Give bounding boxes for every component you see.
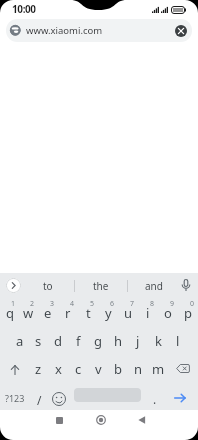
button[interactable]: l bbox=[168, 326, 188, 354]
button[interactable]: the bbox=[75, 273, 127, 298]
staticText: y bbox=[105, 304, 112, 322]
staticText: x bbox=[55, 360, 62, 378]
staticText: to bbox=[43, 279, 53, 293]
staticText: 4 bbox=[70, 299, 75, 309]
button[interactable]: to bbox=[21, 273, 74, 298]
staticText: o bbox=[164, 304, 172, 322]
staticText: a bbox=[16, 332, 24, 350]
button[interactable]: o bbox=[158, 298, 178, 326]
button[interactable]: u bbox=[118, 298, 138, 326]
button[interactable]: t bbox=[78, 298, 98, 326]
staticText: 7 bbox=[130, 299, 135, 309]
staticText: l bbox=[176, 332, 180, 350]
button[interactable]: y bbox=[98, 298, 118, 326]
button[interactable]: . bbox=[148, 382, 168, 410]
button[interactable] bbox=[69, 382, 148, 410]
button[interactable]: g bbox=[88, 326, 108, 354]
button[interactable]: e bbox=[38, 298, 58, 326]
button[interactable]: h bbox=[108, 326, 128, 354]
button[interactable] bbox=[39, 410, 79, 430]
staticText: s bbox=[35, 332, 42, 350]
button[interactable] bbox=[49, 382, 69, 410]
button[interactable] bbox=[6, 278, 21, 293]
staticText: g bbox=[94, 332, 102, 350]
button[interactable] bbox=[122, 410, 162, 430]
button[interactable]: j bbox=[128, 326, 148, 354]
staticText: u bbox=[124, 304, 133, 322]
button[interactable] bbox=[0, 354, 29, 382]
button[interactable]: ?123 bbox=[0, 382, 29, 410]
staticText: the bbox=[93, 279, 109, 293]
staticText: w bbox=[23, 304, 34, 322]
staticText: k bbox=[155, 332, 162, 350]
staticText: h bbox=[114, 332, 123, 350]
staticText: d bbox=[54, 332, 62, 350]
staticText: 5 bbox=[90, 299, 95, 309]
button[interactable]: z bbox=[29, 354, 48, 382]
button[interactable]: k bbox=[148, 326, 168, 354]
staticText: and bbox=[145, 279, 163, 293]
staticText: p bbox=[184, 304, 192, 322]
button[interactable]: p bbox=[178, 298, 198, 326]
staticText: 1 bbox=[11, 299, 16, 309]
button[interactable]: v bbox=[88, 354, 108, 382]
staticText: r bbox=[65, 304, 71, 322]
staticText: f bbox=[76, 332, 81, 350]
staticText: 3 bbox=[50, 299, 55, 309]
button[interactable]: www.xiaomi.com bbox=[6, 19, 192, 42]
staticText: ?123 bbox=[5, 392, 25, 404]
staticText: b bbox=[114, 360, 122, 378]
button[interactable]: a bbox=[10, 326, 29, 354]
staticText: m bbox=[152, 360, 165, 378]
button[interactable]: i bbox=[138, 298, 158, 326]
staticText: j bbox=[136, 332, 140, 350]
staticText: q bbox=[6, 304, 14, 322]
button[interactable]: x bbox=[48, 354, 68, 382]
button[interactable]: n bbox=[128, 354, 148, 382]
button[interactable] bbox=[168, 382, 198, 410]
button[interactable] bbox=[168, 354, 198, 382]
button[interactable]: w bbox=[19, 298, 38, 326]
staticText: t bbox=[86, 304, 91, 322]
staticText: 8 bbox=[150, 299, 155, 309]
button[interactable]: q bbox=[0, 298, 19, 326]
staticText: n bbox=[134, 360, 143, 378]
button[interactable] bbox=[175, 25, 187, 37]
staticText: 6 bbox=[110, 299, 115, 309]
button[interactable]: f bbox=[68, 326, 88, 354]
staticText: c bbox=[75, 360, 82, 378]
button[interactable]: r bbox=[58, 298, 78, 326]
button[interactable]: d bbox=[48, 326, 68, 354]
staticText: v bbox=[95, 360, 102, 378]
button[interactable]: and bbox=[128, 273, 180, 298]
staticText: e bbox=[44, 304, 52, 322]
button[interactable]: m bbox=[148, 354, 168, 382]
button[interactable]: / bbox=[29, 382, 49, 410]
staticText: www.xiaomi.com bbox=[26, 24, 103, 37]
staticText: 2 bbox=[30, 299, 35, 309]
staticText: 10:00 bbox=[12, 2, 36, 15]
staticText: . bbox=[153, 391, 157, 407]
staticText: 0 bbox=[190, 299, 195, 309]
button[interactable] bbox=[81, 410, 121, 430]
staticText: 9 bbox=[170, 299, 175, 309]
staticText: i bbox=[146, 304, 150, 322]
staticText: / bbox=[37, 392, 42, 408]
button[interactable]: c bbox=[68, 354, 88, 382]
staticText: z bbox=[35, 360, 42, 378]
button[interactable]: s bbox=[29, 326, 48, 354]
button[interactable]: b bbox=[108, 354, 128, 382]
